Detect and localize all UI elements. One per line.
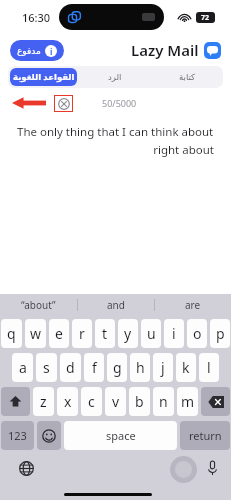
button[interactable]: f bbox=[84, 353, 104, 382]
button[interactable]: d bbox=[60, 353, 81, 382]
button[interactable]: z bbox=[33, 387, 54, 416]
button[interactable]: return bbox=[180, 421, 230, 450]
button[interactable]: Backspace bbox=[201, 387, 230, 416]
staticText: q bbox=[7, 324, 16, 343]
button[interactable]: القواعد اللغوية bbox=[10, 68, 77, 86]
staticText: r bbox=[79, 324, 85, 343]
staticText: مدفوع bbox=[17, 46, 41, 56]
other: Lazy Mail bbox=[204, 42, 221, 59]
staticText: h bbox=[136, 358, 145, 377]
staticText: m bbox=[181, 392, 195, 411]
staticText: b bbox=[135, 392, 144, 411]
button[interactable]: “about” bbox=[0, 294, 77, 316]
button[interactable]: كتابة bbox=[153, 68, 221, 86]
staticText: i bbox=[50, 46, 53, 57]
staticText: g bbox=[113, 358, 122, 377]
staticText: e bbox=[55, 324, 63, 343]
staticText: p bbox=[216, 324, 225, 343]
button[interactable]: space bbox=[64, 421, 177, 450]
button[interactable]: l bbox=[199, 353, 219, 382]
button[interactable]: w bbox=[25, 319, 46, 348]
button[interactable]: and bbox=[78, 294, 154, 316]
staticText: 72 bbox=[201, 13, 210, 23]
staticText: f bbox=[92, 358, 97, 377]
button[interactable]: e bbox=[49, 319, 69, 348]
button[interactable]: r bbox=[72, 319, 92, 348]
staticText: 123 bbox=[8, 428, 27, 443]
button[interactable]: a bbox=[12, 353, 33, 382]
staticText: z bbox=[40, 392, 47, 411]
button[interactable]: x bbox=[57, 387, 78, 416]
staticText: a bbox=[19, 358, 27, 377]
staticText: right about bbox=[17, 142, 214, 158]
button[interactable]: j bbox=[153, 353, 173, 382]
button[interactable]: g bbox=[107, 353, 127, 382]
staticText: Lazy Mail bbox=[131, 40, 199, 60]
staticText: space bbox=[106, 428, 136, 443]
button[interactable]: h bbox=[130, 353, 150, 382]
button[interactable]: m bbox=[177, 387, 198, 416]
staticText: d bbox=[66, 358, 75, 377]
staticText: The only thing that I can think about bbox=[17, 124, 214, 140]
staticText: c bbox=[88, 392, 95, 411]
button[interactable]: v bbox=[105, 387, 126, 416]
staticText: w bbox=[30, 324, 42, 343]
button[interactable]: Clear text bbox=[58, 98, 70, 110]
button[interactable]: b bbox=[129, 387, 150, 416]
staticText: القواعد اللغوية bbox=[13, 71, 75, 83]
staticText: return bbox=[189, 428, 222, 443]
staticText: i bbox=[172, 324, 176, 343]
staticText: الرد bbox=[108, 72, 122, 82]
button[interactable]: p bbox=[210, 319, 230, 348]
button[interactable]: مدفوع bbox=[10, 40, 64, 61]
staticText: y bbox=[124, 324, 132, 343]
button[interactable]: Shift bbox=[1, 387, 30, 416]
staticText: “about” bbox=[21, 298, 56, 312]
staticText: l bbox=[207, 358, 211, 377]
button[interactable]: c bbox=[81, 387, 102, 416]
staticText: u bbox=[147, 324, 156, 343]
button[interactable]: q bbox=[1, 319, 22, 348]
staticText: v bbox=[112, 392, 120, 411]
staticText: t bbox=[102, 324, 108, 343]
staticText: x bbox=[64, 392, 72, 411]
staticText: o bbox=[193, 324, 202, 343]
staticText: and bbox=[107, 298, 125, 312]
staticText: كتابة bbox=[179, 72, 196, 82]
staticText: n bbox=[159, 392, 168, 411]
staticText: 50/5000 bbox=[102, 97, 137, 109]
staticText: j bbox=[161, 358, 165, 377]
staticText: are bbox=[185, 298, 201, 312]
button[interactable]: u bbox=[141, 319, 161, 348]
staticText: k bbox=[182, 358, 190, 377]
button[interactable]: Change keyboard language bbox=[16, 458, 36, 478]
button[interactable]: Assistant bbox=[170, 456, 197, 483]
button[interactable]: The only thing that I can think about bbox=[17, 124, 214, 158]
staticText: s bbox=[43, 358, 50, 377]
button[interactable]: t bbox=[95, 319, 115, 348]
button[interactable]: n bbox=[153, 387, 174, 416]
button[interactable]: i bbox=[164, 319, 184, 348]
button[interactable]: 123 bbox=[1, 421, 34, 450]
button[interactable]: s bbox=[36, 353, 57, 382]
button[interactable]: o bbox=[187, 319, 207, 348]
button[interactable]: are bbox=[155, 294, 231, 316]
staticText: 16:30 bbox=[22, 10, 51, 25]
button[interactable]: Dictation bbox=[203, 459, 221, 477]
button[interactable]: Emoji bbox=[37, 421, 61, 450]
button[interactable]: الرد bbox=[81, 68, 149, 86]
button[interactable]: y bbox=[118, 319, 138, 348]
button[interactable]: k bbox=[176, 353, 196, 382]
